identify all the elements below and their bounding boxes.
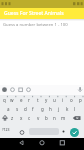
button[interactable]: ?123 [2, 127, 10, 132]
button[interactable] [0, 138, 28, 150]
staticText: u [53, 97, 56, 103]
button[interactable]: c [25, 113, 33, 122]
staticText: y [45, 97, 48, 103]
button[interactable]: n [50, 113, 58, 122]
staticText: x [20, 115, 23, 121]
button[interactable]: p [76, 95, 84, 104]
button[interactable]: j [55, 104, 63, 113]
staticText: k [66, 106, 69, 112]
staticText: r [28, 97, 30, 103]
button[interactable]: Guess For Street Animals [0, 8, 84, 19]
button[interactable] [70, 128, 79, 137]
button[interactable]: a [4, 104, 12, 113]
button[interactable]: o [67, 95, 75, 104]
staticText: s [16, 106, 19, 112]
button[interactable]: y [42, 95, 50, 104]
staticText: b [45, 115, 48, 121]
button[interactable]: i [59, 95, 67, 104]
staticText: w [10, 97, 14, 103]
button[interactable] [56, 138, 84, 150]
button[interactable]: w [8, 95, 16, 104]
staticText: v [37, 115, 40, 121]
staticText: p [79, 97, 82, 103]
button[interactable]: z [8, 113, 16, 122]
staticText: o [70, 97, 73, 103]
staticText: g [41, 106, 44, 112]
button[interactable]: u [50, 95, 58, 104]
staticText: f [32, 106, 34, 112]
button[interactable]: t [34, 95, 42, 104]
button[interactable]: x [17, 113, 25, 122]
button[interactable]: q [0, 95, 8, 104]
button[interactable]: h [46, 104, 54, 113]
staticText: Guess For Street Animals [4, 10, 64, 17]
staticText: m [61, 115, 66, 121]
button[interactable]: s [13, 104, 21, 113]
button[interactable]: k [63, 104, 71, 113]
button[interactable]: g [38, 104, 46, 113]
staticText: l [74, 106, 76, 112]
button[interactable]: b [42, 113, 50, 122]
button[interactable]: d [21, 104, 29, 113]
staticText: j [58, 106, 60, 112]
staticText: c [28, 115, 31, 121]
staticText: h [49, 106, 52, 112]
staticText: i [62, 97, 64, 103]
button[interactable] [28, 138, 56, 150]
button[interactable]: Guess a number between 1 - 100 [3, 22, 68, 28]
button[interactable]: e [17, 95, 25, 104]
staticText: e [20, 97, 23, 103]
button[interactable]: f [29, 104, 37, 113]
staticText: d [24, 106, 27, 112]
staticText: q [3, 97, 6, 103]
button[interactable]: v [34, 113, 42, 122]
button[interactable]: m [59, 113, 67, 122]
button[interactable] [0, 85, 84, 95]
staticText: n [53, 115, 56, 121]
staticText: t [37, 97, 39, 103]
staticText: a [7, 106, 10, 112]
button[interactable]: r [25, 95, 33, 104]
staticText: z [11, 115, 14, 121]
button[interactable]: l [71, 104, 79, 113]
